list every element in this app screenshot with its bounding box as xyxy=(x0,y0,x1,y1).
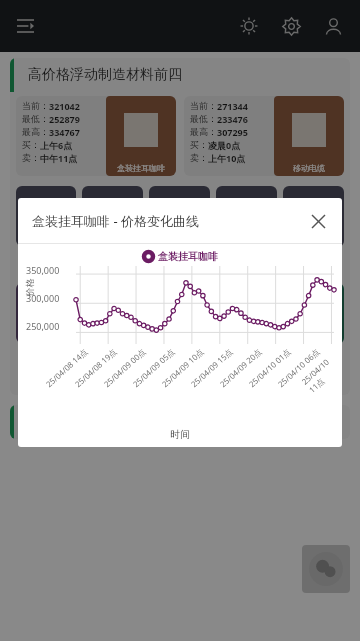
button[interactable] xyxy=(149,283,210,344)
staticText: 25/04/09 10点 xyxy=(159,346,206,389)
staticText: 最低： xyxy=(190,113,217,124)
staticText: 当前： xyxy=(22,100,49,111)
staticText: 时间 xyxy=(170,428,190,441)
staticText: 4.6x30mm Subsonic SX xyxy=(224,347,269,381)
staticText: 334767 xyxy=(49,126,80,138)
button[interactable]: Close xyxy=(304,207,332,235)
staticText: 中午11点 xyxy=(40,152,78,164)
staticText: 7.62x39m m M62 xyxy=(25,249,67,272)
button[interactable]: 当前： xyxy=(16,96,176,176)
staticText: 最低： xyxy=(22,113,49,124)
button[interactable] xyxy=(82,283,143,344)
staticText: 25/04/10 01点 xyxy=(246,346,293,389)
staticText: 盒装挂耳咖啡 xyxy=(117,163,165,173)
staticText: 上午10点 xyxy=(208,152,246,164)
staticText: 25/04/09 20点 xyxy=(217,346,264,389)
staticText: 25/04/08 14点 xyxy=(43,346,90,389)
staticText: 5.8x42mm DBP10 xyxy=(90,347,135,370)
staticText: 盒装挂耳咖啡 - 价格变化曲线 xyxy=(32,212,199,230)
staticText: .45 ACP RIP xyxy=(164,347,196,370)
staticText: 25/04/09 05点 xyxy=(130,346,177,389)
staticText: 卖： xyxy=(22,152,40,163)
button[interactable]: WeChat xyxy=(302,545,350,593)
staticText: 271344 xyxy=(217,100,248,112)
staticText: 高价格浮动制造材料前四 xyxy=(28,66,182,84)
staticText: 移动电缆 xyxy=(293,163,325,173)
staticText: 上午6点 xyxy=(40,139,73,151)
button[interactable] xyxy=(16,283,76,343)
staticText: 25/04/10 06点 xyxy=(275,346,322,389)
staticText: 25/04/09 15点 xyxy=(188,346,235,389)
button[interactable]: Brightness xyxy=(232,9,266,43)
staticText: 最高： xyxy=(190,126,217,137)
staticText: 买： xyxy=(190,139,208,150)
staticText: 321042 xyxy=(49,100,80,112)
staticText: 买： xyxy=(22,139,40,150)
staticText: 252879 xyxy=(49,113,80,125)
staticText: 25/04/09 00点 xyxy=(101,346,148,389)
button[interactable] xyxy=(283,283,344,344)
staticText: 233476 xyxy=(217,113,248,125)
staticText: 4.6x30mm FMJ SX xyxy=(24,346,69,369)
staticText: 25/04/08 19点 xyxy=(72,346,119,389)
button[interactable] xyxy=(216,186,277,247)
staticText: 300,000 xyxy=(26,292,60,304)
button[interactable]: Account xyxy=(316,9,350,43)
staticText: 盒装挂耳咖啡 xyxy=(158,250,218,263)
staticText: 307295 xyxy=(217,126,248,138)
button[interactable] xyxy=(16,186,76,246)
button[interactable]: Settings xyxy=(274,9,308,43)
staticText: 卖： xyxy=(190,152,208,163)
button[interactable] xyxy=(82,186,143,247)
staticText: 最高： xyxy=(22,126,49,137)
button[interactable]: 当前： xyxy=(184,96,344,176)
button[interactable] xyxy=(216,283,277,344)
button[interactable]: Menu xyxy=(8,8,44,44)
button[interactable] xyxy=(283,186,344,247)
staticText: 当前： xyxy=(190,100,217,111)
staticText: 9x39mm SP6 xyxy=(295,250,333,273)
staticText: 250,000 xyxy=(26,320,60,332)
staticText: 7.62x54R LPS xyxy=(160,250,199,273)
button[interactable] xyxy=(149,186,210,247)
staticText: 350,000 xyxy=(26,264,60,276)
staticText: 凌晨0点 xyxy=(208,139,241,151)
staticText: 25/04/10 11点 xyxy=(299,351,342,395)
staticText: .50 AE HP xyxy=(293,347,334,359)
staticText: 价格 xyxy=(23,278,34,296)
